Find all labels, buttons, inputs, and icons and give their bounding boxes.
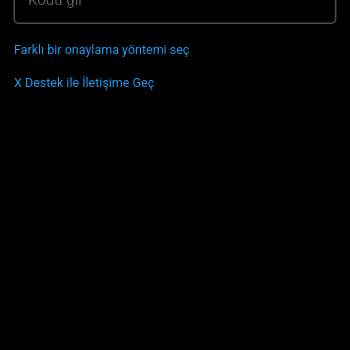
staticText: Farklı bir onaylama yöntemi seç [14, 42, 190, 57]
button[interactable]: Kodu gir [0, 0, 350, 24]
button[interactable]: X Destek ile İletişime Geç [14, 75, 155, 90]
staticText: Kodu gir [28, 0, 84, 9]
staticText: X Destek ile İletişime Geç [14, 75, 155, 90]
button[interactable]: Farklı bir onaylama yöntemi seç [14, 42, 190, 57]
